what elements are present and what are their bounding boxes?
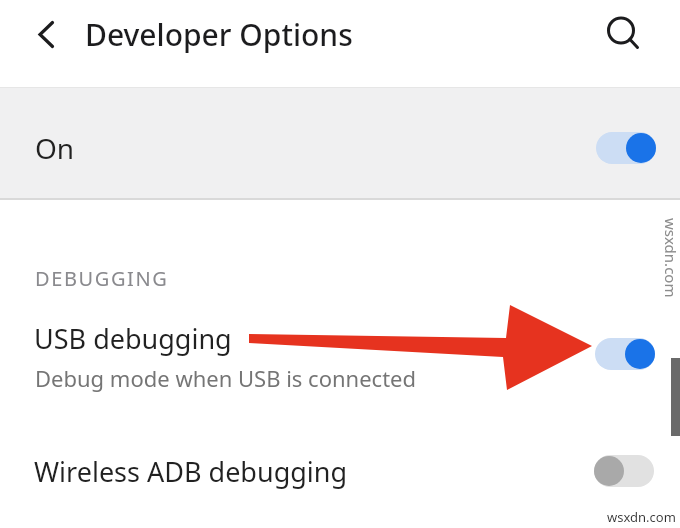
staticText: On	[35, 129, 75, 167]
button[interactable]	[602, 12, 642, 52]
staticText: Developer Options	[85, 14, 353, 55]
button[interactable]	[0, 88, 680, 199]
staticText: DEBUGGING	[35, 265, 169, 292]
button[interactable]	[0, 440, 680, 505]
staticText: wsxdn.com	[607, 508, 676, 526]
button[interactable]	[0, 310, 680, 400]
staticText: USB debugging	[34, 320, 232, 357]
button[interactable]	[594, 455, 654, 487]
button[interactable]	[595, 338, 655, 370]
staticText: wsxdn.com	[665, 218, 680, 298]
button[interactable]	[26, 18, 62, 54]
button[interactable]	[596, 132, 656, 164]
staticText: Debug mode when USB is connected	[35, 363, 417, 393]
staticText: Wireless ADB debugging	[34, 453, 348, 490]
